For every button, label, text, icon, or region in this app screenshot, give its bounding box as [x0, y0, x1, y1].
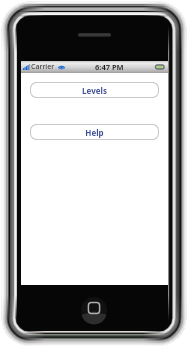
staticText: 6:47 PM: [95, 62, 124, 72]
staticText: Help: [85, 127, 104, 138]
button[interactable]: Help: [30, 124, 159, 140]
other: Home: [81, 297, 107, 323]
staticText: Carrier: [31, 62, 55, 72]
button[interactable]: Levels: [30, 82, 159, 98]
staticText: Levels: [82, 85, 107, 96]
